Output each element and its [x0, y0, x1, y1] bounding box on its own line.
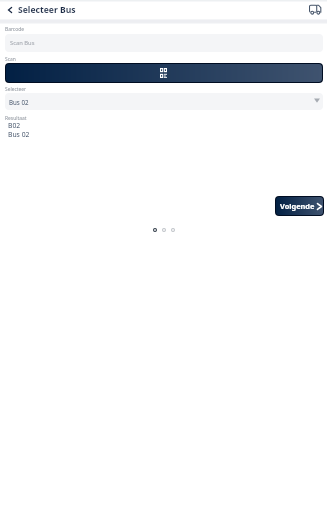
staticText: Scan [5, 56, 16, 63]
button[interactable]: Deliveries [305, 0, 327, 20]
staticText: B02 [8, 121, 21, 130]
button[interactable]: Go to page [170, 227, 176, 233]
staticText: Scan Bus [10, 39, 35, 47]
staticText: Selecteer [5, 86, 27, 93]
button[interactable]: Barcode [5, 34, 323, 52]
staticText: Bus 02 [9, 98, 29, 106]
staticText: Resultaat [5, 115, 27, 122]
button[interactable]: Page 1 of 3 [152, 227, 158, 233]
button[interactable]: Back [0, 0, 20, 20]
button[interactable]: Volgende [275, 196, 324, 216]
button[interactable]: Scan barcode [5, 63, 323, 83]
staticText: Volgende [280, 201, 315, 211]
staticText: Selecteer Bus [18, 4, 76, 16]
button[interactable]: Go to page [161, 227, 167, 233]
staticText: Barcode [5, 26, 24, 33]
staticText: Bus 02 [8, 130, 30, 139]
button[interactable]: Selecteer bus [5, 93, 323, 110]
